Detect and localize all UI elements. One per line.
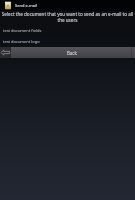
staticText: test document fields	[3, 28, 42, 33]
button[interactable]: test document logo	[0, 36, 135, 47]
staticText: Send e-mail	[15, 3, 38, 8]
button[interactable]: Back	[11, 47, 135, 58]
staticText: Select the document that you want to sen…	[1, 11, 134, 23]
button[interactable]: test document fields	[0, 25, 135, 36]
staticText: test document logo	[3, 39, 40, 44]
staticText: Back	[67, 50, 77, 56]
button[interactable]: Back	[0, 47, 11, 58]
